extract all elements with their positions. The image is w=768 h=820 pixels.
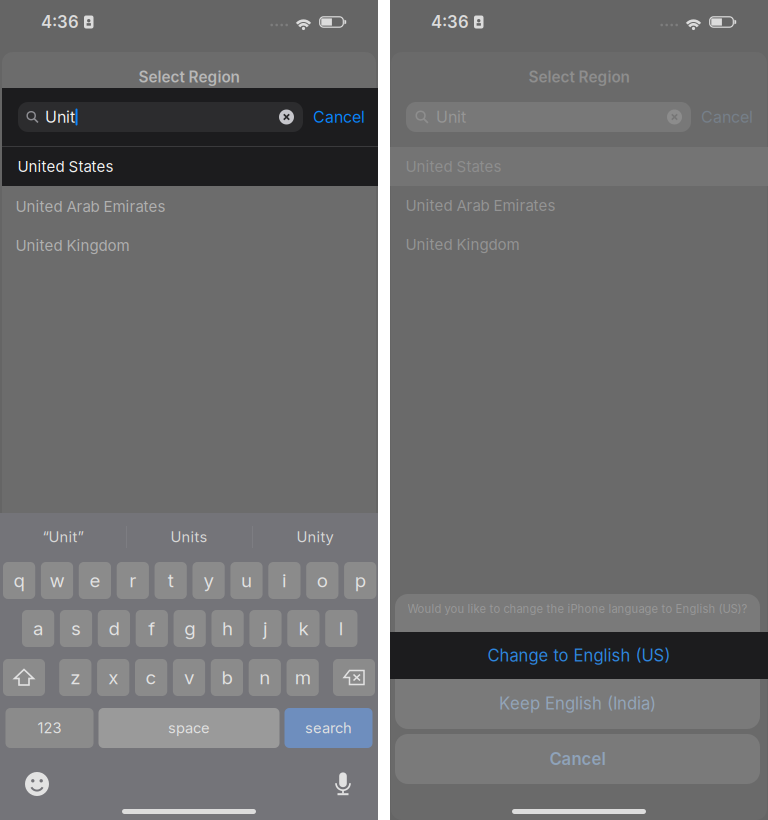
staticText: United Arab Emirates: [405, 196, 555, 215]
staticText: Keep English (India): [499, 693, 656, 714]
button[interactable]: Emoji keyboard: [24, 771, 50, 797]
staticText: o: [317, 569, 328, 592]
button[interactable]: q: [3, 562, 35, 599]
button[interactable]: United States: [390, 147, 768, 186]
staticText: Cancel: [701, 107, 753, 127]
staticText: Unit: [45, 107, 75, 127]
staticText: c: [146, 666, 157, 689]
staticText: Unit: [436, 107, 466, 127]
staticText: Units: [170, 528, 207, 546]
staticText: v: [184, 666, 194, 689]
staticText: United Kingdom: [15, 236, 129, 255]
staticText: z: [70, 666, 80, 689]
button[interactable]: b: [211, 659, 243, 696]
button[interactable]: United Arab Emirates: [0, 187, 378, 226]
button[interactable]: Cancel: [395, 734, 760, 784]
staticText: h: [222, 617, 233, 640]
staticText: Unity: [296, 528, 333, 546]
button[interactable]: c: [135, 659, 167, 696]
button[interactable]: Dictation: [332, 772, 354, 796]
staticText: space: [168, 719, 210, 737]
staticText: j: [263, 617, 268, 640]
staticText: t: [168, 569, 174, 592]
button[interactable]: o: [306, 562, 338, 599]
button[interactable]: Keep English (India): [395, 680, 760, 727]
button[interactable]: e: [79, 562, 111, 599]
staticText: p: [355, 569, 366, 592]
staticText: k: [298, 617, 308, 640]
button[interactable]: Units: [126, 518, 252, 556]
staticText: s: [71, 617, 81, 640]
button[interactable]: Change to English (US): [390, 632, 768, 679]
staticText: 4:36: [431, 12, 469, 32]
staticText: United States: [17, 157, 113, 176]
button[interactable]: 123: [5, 708, 93, 748]
button[interactable]: United Kingdom: [0, 226, 378, 265]
button[interactable]: Cancel: [313, 102, 375, 132]
staticText: l: [339, 617, 344, 640]
staticText: w: [49, 569, 64, 592]
staticText: United States: [405, 157, 501, 176]
button[interactable]: s: [60, 610, 92, 647]
button[interactable]: p: [344, 562, 376, 599]
staticText: x: [108, 666, 118, 689]
button[interactable]: g: [174, 610, 206, 647]
button[interactable]: y: [192, 562, 225, 599]
staticText: United Kingdom: [405, 235, 519, 254]
button[interactable]: “Unit”: [0, 518, 126, 556]
button[interactable]: w: [41, 562, 73, 599]
button[interactable]: u: [230, 562, 263, 599]
button[interactable]: d: [98, 610, 130, 647]
staticText: i: [282, 569, 287, 592]
staticText: Select Region: [138, 68, 239, 86]
staticText: u: [241, 569, 252, 592]
button[interactable]: Delete: [333, 659, 375, 696]
staticText: Cancel: [549, 749, 605, 769]
staticText: Change to English (US): [487, 645, 670, 666]
button[interactable]: United Arab Emirates: [390, 186, 768, 225]
button[interactable]: Cancel: [701, 102, 763, 132]
button[interactable]: h: [211, 610, 244, 647]
staticText: 123: [37, 719, 61, 737]
staticText: b: [221, 666, 232, 689]
button[interactable]: k: [287, 610, 319, 647]
button[interactable]: f: [136, 610, 168, 647]
staticText: d: [108, 617, 119, 640]
button[interactable]: Shift: [3, 659, 45, 696]
staticText: search: [305, 719, 352, 737]
button[interactable]: Unity: [252, 518, 378, 556]
button[interactable]: v: [173, 659, 205, 696]
staticText: n: [259, 666, 270, 689]
button[interactable]: United Kingdom: [390, 225, 768, 264]
staticText: g: [184, 617, 195, 640]
button[interactable]: i: [268, 562, 300, 599]
staticText: q: [14, 569, 25, 592]
staticText: f: [148, 617, 155, 640]
button[interactable]: m: [287, 659, 319, 696]
button[interactable]: j: [249, 610, 282, 647]
staticText: a: [33, 617, 43, 640]
button[interactable]: n: [249, 659, 281, 696]
staticText: United Arab Emirates: [15, 197, 165, 216]
staticText: 4:36: [41, 12, 79, 32]
button[interactable]: a: [22, 610, 54, 647]
button[interactable]: z: [59, 659, 91, 696]
button[interactable]: r: [117, 562, 149, 599]
button[interactable]: search: [284, 708, 372, 748]
staticText: Cancel: [313, 107, 365, 127]
button[interactable]: t: [155, 562, 187, 599]
button[interactable]: United States: [2, 147, 378, 186]
button[interactable]: space: [98, 708, 279, 748]
staticText: y: [204, 569, 214, 592]
staticText: “Unit”: [42, 528, 83, 546]
button[interactable]: x: [97, 659, 129, 696]
button[interactable]: l: [325, 610, 357, 647]
staticText: e: [89, 569, 100, 592]
staticText: m: [295, 666, 311, 689]
staticText: Would you like to change the iPhone lang…: [407, 602, 747, 616]
staticText: Select Region: [528, 68, 629, 86]
staticText: r: [129, 569, 136, 592]
